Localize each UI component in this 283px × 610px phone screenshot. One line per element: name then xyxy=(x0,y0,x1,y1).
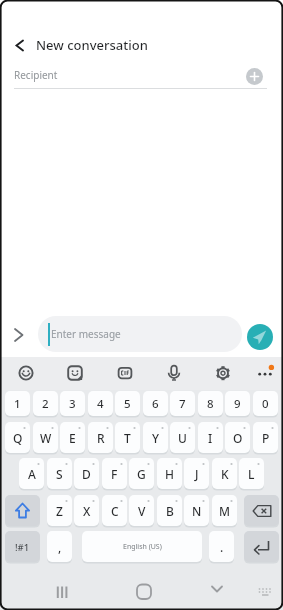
staticText: J xyxy=(195,466,199,482)
button[interactable]: H xyxy=(157,458,182,490)
staticText: Q xyxy=(13,430,23,446)
button[interactable] xyxy=(211,361,235,385)
button[interactable]: Y xyxy=(143,422,168,454)
staticText: B xyxy=(166,503,174,519)
staticText: 9 xyxy=(234,396,241,412)
button[interactable] xyxy=(252,582,276,602)
staticText: D xyxy=(82,466,91,482)
staticText: W xyxy=(40,430,52,446)
staticText: Y xyxy=(152,430,160,446)
button[interactable]: . xyxy=(209,531,234,563)
staticText: Z xyxy=(56,503,63,519)
staticText: New conversation xyxy=(36,36,148,54)
button[interactable]: J xyxy=(184,458,209,490)
staticText: !#1 xyxy=(15,541,30,554)
button[interactable]: M xyxy=(212,495,237,527)
staticText: . xyxy=(220,539,224,555)
button[interactable] xyxy=(247,324,273,350)
staticText: 7 xyxy=(179,396,186,412)
staticText: Enter message xyxy=(51,327,121,341)
button[interactable]: 5 xyxy=(115,391,140,417)
button[interactable]: L xyxy=(239,458,264,490)
button[interactable]: X xyxy=(74,495,99,527)
button[interactable]: B xyxy=(157,495,182,527)
button[interactable] xyxy=(244,531,279,563)
button[interactable]: N xyxy=(184,495,209,527)
button[interactable]: P xyxy=(253,422,278,454)
staticText: 8 xyxy=(207,396,214,412)
button[interactable]: C xyxy=(102,495,127,527)
staticText: 0 xyxy=(262,396,269,412)
button[interactable]: English (US) xyxy=(82,531,202,563)
button[interactable]: Enter message xyxy=(38,316,242,352)
staticText: F xyxy=(111,466,118,482)
button[interactable]: 6 xyxy=(143,391,168,417)
staticText: 1 xyxy=(14,396,21,412)
button[interactable]: 3 xyxy=(60,391,85,417)
button[interactable]: E xyxy=(60,422,85,454)
staticText: , xyxy=(58,539,62,555)
staticText: R xyxy=(97,430,105,446)
button[interactable] xyxy=(253,361,277,385)
button[interactable] xyxy=(63,361,87,385)
button[interactable]: Q xyxy=(5,422,30,454)
staticText: X xyxy=(83,503,91,519)
button[interactable] xyxy=(8,33,32,57)
staticText: P xyxy=(262,430,270,446)
button[interactable]: Z xyxy=(47,495,72,527)
staticText: 5 xyxy=(124,396,131,412)
button[interactable]: R xyxy=(88,422,113,454)
button[interactable]: 9 xyxy=(225,391,250,417)
button[interactable]: S xyxy=(47,458,72,490)
button[interactable] xyxy=(5,495,40,527)
staticText: A xyxy=(28,466,36,482)
button[interactable]: G xyxy=(129,458,154,490)
button[interactable]: Recipient xyxy=(0,58,283,91)
button[interactable] xyxy=(246,68,263,85)
staticText: I xyxy=(208,430,213,446)
button[interactable]: 0 xyxy=(253,391,278,417)
button[interactable]: 7 xyxy=(170,391,195,417)
staticText: 4 xyxy=(97,396,104,412)
staticText: Recipient xyxy=(14,68,58,82)
button[interactable]: F xyxy=(102,458,127,490)
staticText: 6 xyxy=(152,396,159,412)
button[interactable] xyxy=(199,578,235,604)
button[interactable] xyxy=(244,495,279,527)
button[interactable] xyxy=(126,578,157,604)
staticText: T xyxy=(124,430,131,446)
staticText: K xyxy=(221,466,229,482)
button[interactable] xyxy=(162,361,186,385)
button[interactable] xyxy=(113,361,137,385)
button[interactable]: !#1 xyxy=(5,531,40,563)
button[interactable]: W xyxy=(33,422,58,454)
staticText: H xyxy=(165,466,174,482)
button[interactable] xyxy=(44,578,80,604)
staticText: 3 xyxy=(69,396,76,412)
button[interactable]: , xyxy=(47,531,72,563)
button[interactable]: V xyxy=(129,495,154,527)
button[interactable]: O xyxy=(225,422,250,454)
button[interactable]: 1 xyxy=(5,391,30,417)
button[interactable]: T xyxy=(115,422,140,454)
staticText: 2 xyxy=(42,396,49,412)
button[interactable]: 4 xyxy=(88,391,113,417)
staticText: U xyxy=(178,430,187,446)
button[interactable]: D xyxy=(74,458,99,490)
button[interactable]: K xyxy=(212,458,237,490)
staticText: N xyxy=(192,503,202,519)
button[interactable]: U xyxy=(170,422,195,454)
staticText: C xyxy=(111,503,119,519)
staticText: S xyxy=(56,466,63,482)
staticText: English (US) xyxy=(123,542,162,552)
button[interactable] xyxy=(8,323,30,345)
button[interactable]: 2 xyxy=(33,391,58,417)
staticText: L xyxy=(248,466,255,482)
button[interactable]: 8 xyxy=(198,391,223,417)
staticText: M xyxy=(219,503,231,519)
staticText: E xyxy=(69,430,76,446)
button[interactable]: A xyxy=(19,458,44,490)
button[interactable] xyxy=(14,361,38,385)
button[interactable]: I xyxy=(198,422,223,454)
staticText: O xyxy=(233,430,243,446)
